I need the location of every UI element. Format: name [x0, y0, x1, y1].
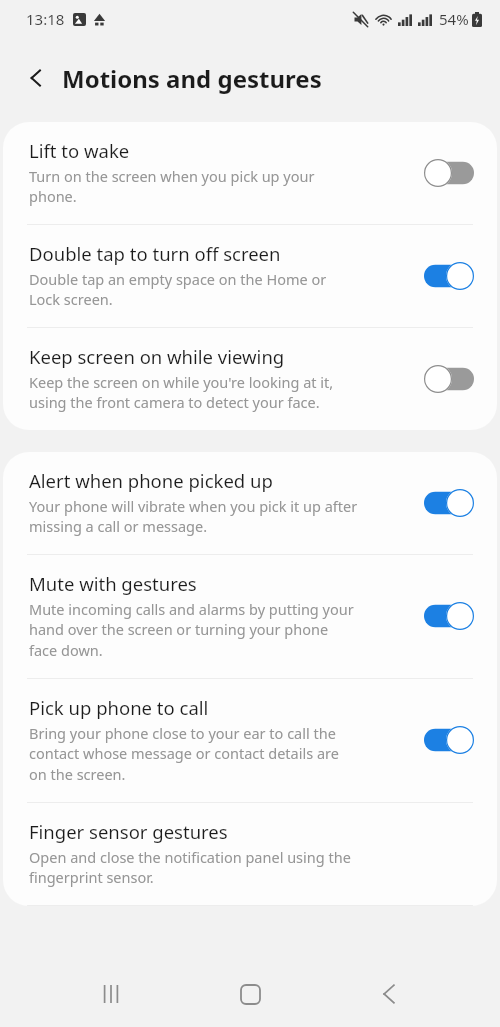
button[interactable]: On [423, 261, 475, 291]
button[interactable]: On [423, 725, 475, 755]
staticText: Mute with gestures [29, 571, 197, 596]
staticText: 13:18 [26, 9, 65, 29]
button[interactable]: Off [423, 364, 475, 394]
button[interactable]: Mute with gestures [3, 555, 497, 678]
button[interactable]: Lift to wake [3, 122, 497, 224]
staticText: Your phone will vibrate when you pick it… [29, 496, 358, 537]
staticText: Mute incoming calls and alarms by puttin… [29, 599, 354, 661]
button[interactable]: Alert when phone picked up [3, 452, 497, 554]
button[interactable]: Recent apps [83, 966, 139, 1022]
staticText: Alert when phone picked up [29, 468, 273, 493]
button[interactable]: Double tap to turn off screen [3, 225, 497, 327]
button[interactable]: On [423, 488, 475, 518]
staticText: Double tap to turn off screen [29, 241, 281, 266]
button[interactable]: Finger sensor gestures [3, 803, 497, 905]
staticText: Open and close the notification panel us… [29, 847, 351, 888]
button[interactable]: Pick up phone to call [3, 679, 497, 802]
staticText: 54% [439, 9, 469, 29]
staticText: Bring your phone close to your ear to ca… [29, 723, 339, 785]
staticText: Keep the screen on while you're looking … [29, 372, 334, 413]
staticText: Motions and gestures [62, 62, 322, 95]
button[interactable]: Home [222, 966, 278, 1022]
staticText: Pick up phone to call [29, 695, 209, 720]
staticText: Double tap an empty space on the Home or… [29, 269, 327, 310]
button[interactable]: Back [14, 56, 58, 100]
button[interactable]: On [423, 601, 475, 631]
staticText: Keep screen on while viewing [29, 344, 285, 369]
staticText: Turn on the screen when you pick up your… [29, 166, 315, 207]
staticText: Lift to wake [29, 138, 130, 163]
button[interactable]: Keep screen on while viewing [3, 328, 497, 430]
button[interactable]: Back [361, 966, 417, 1022]
button[interactable]: Off [423, 158, 475, 188]
staticText: Finger sensor gestures [29, 819, 228, 844]
